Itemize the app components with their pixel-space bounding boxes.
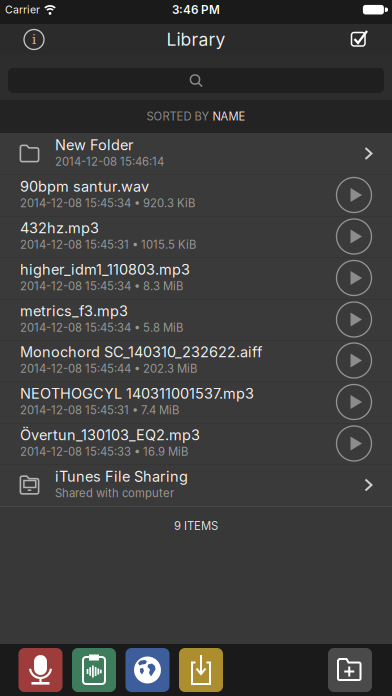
button[interactable]: Paste clipboard [72,648,116,692]
button[interactable]: 90bpm santur.wav [0,174,392,216]
staticText: 90bpm santur.wav [20,178,149,194]
staticText: Monochord SC_140310_232622.aiff [20,344,262,360]
staticText: higher_idm1_110803.mp3 [20,261,190,277]
staticText: Carrier [5,3,40,16]
button[interactable]: Monochord SC_140310_232622.aiff [0,340,392,381]
staticText: i [32,32,36,47]
staticText: Library [166,29,225,50]
staticText: 2014-12-08 15:45:44 • 202.3 MiB [20,362,197,375]
button[interactable]: Play [336,343,371,378]
staticText: NEOTHOGCYL 140311001537.mp3 [20,385,254,401]
staticText: NAME [212,110,245,123]
staticText: Shared with computer [55,487,174,500]
staticText: 2014-12-08 15:45:34 • 5.8 MiB [20,321,183,334]
button[interactable]: Browser [125,648,169,692]
staticText: 2014-12-08 15:45:34 • 920.3 KiB [20,197,195,210]
staticText: Övertun_130103_EQ2.mp3 [20,427,200,443]
staticText: metrics_f3.mp3 [20,303,128,319]
button[interactable]: Play [336,302,371,337]
staticText: 2014-12-08 15:45:34 • 8.3 MiB [20,280,183,293]
button[interactable]: NEOTHOGCYL 140311001537.mp3 [0,381,392,423]
button[interactable]: Record [18,648,62,692]
staticText: 9 ITEMS [174,519,218,533]
button[interactable]: 432hz.mp3 [0,216,392,257]
button[interactable]: Play [336,384,371,419]
button[interactable]: Play [336,260,371,295]
button[interactable]: metrics_f3.mp3 [0,299,392,340]
button[interactable]: Play [336,426,371,461]
button[interactable]: higher_idm1_110803.mp3 [0,257,392,299]
button[interactable]: New Folder [0,133,392,174]
staticText: 2014-12-08 15:46:14 [55,155,164,168]
button[interactable]: Info [16,21,52,57]
staticText: 432hz.mp3 [20,220,99,236]
button[interactable]: New folder [328,648,372,692]
button[interactable]: Övertun_130103_EQ2.mp3 [0,423,392,464]
staticText: SORTED BY [146,110,212,123]
button[interactable]: Play [336,177,371,212]
staticText: 3:46 PM [172,3,220,17]
button[interactable]: Play [336,219,371,254]
button[interactable]: Select items [343,21,379,57]
staticText: iTunes File Sharing [55,468,188,484]
staticText: 2014-12-08 15:45:31 • 1015.5 KiB [20,238,196,251]
button[interactable]: Import [179,648,223,692]
staticText: New Folder [55,137,133,153]
staticText: 2014-12-08 15:45:33 • 16.9 MiB [20,445,188,458]
staticText: 2014-12-08 15:45:31 • 7.4 MiB [20,404,179,417]
button[interactable]: iTunes File Sharing [0,464,392,506]
